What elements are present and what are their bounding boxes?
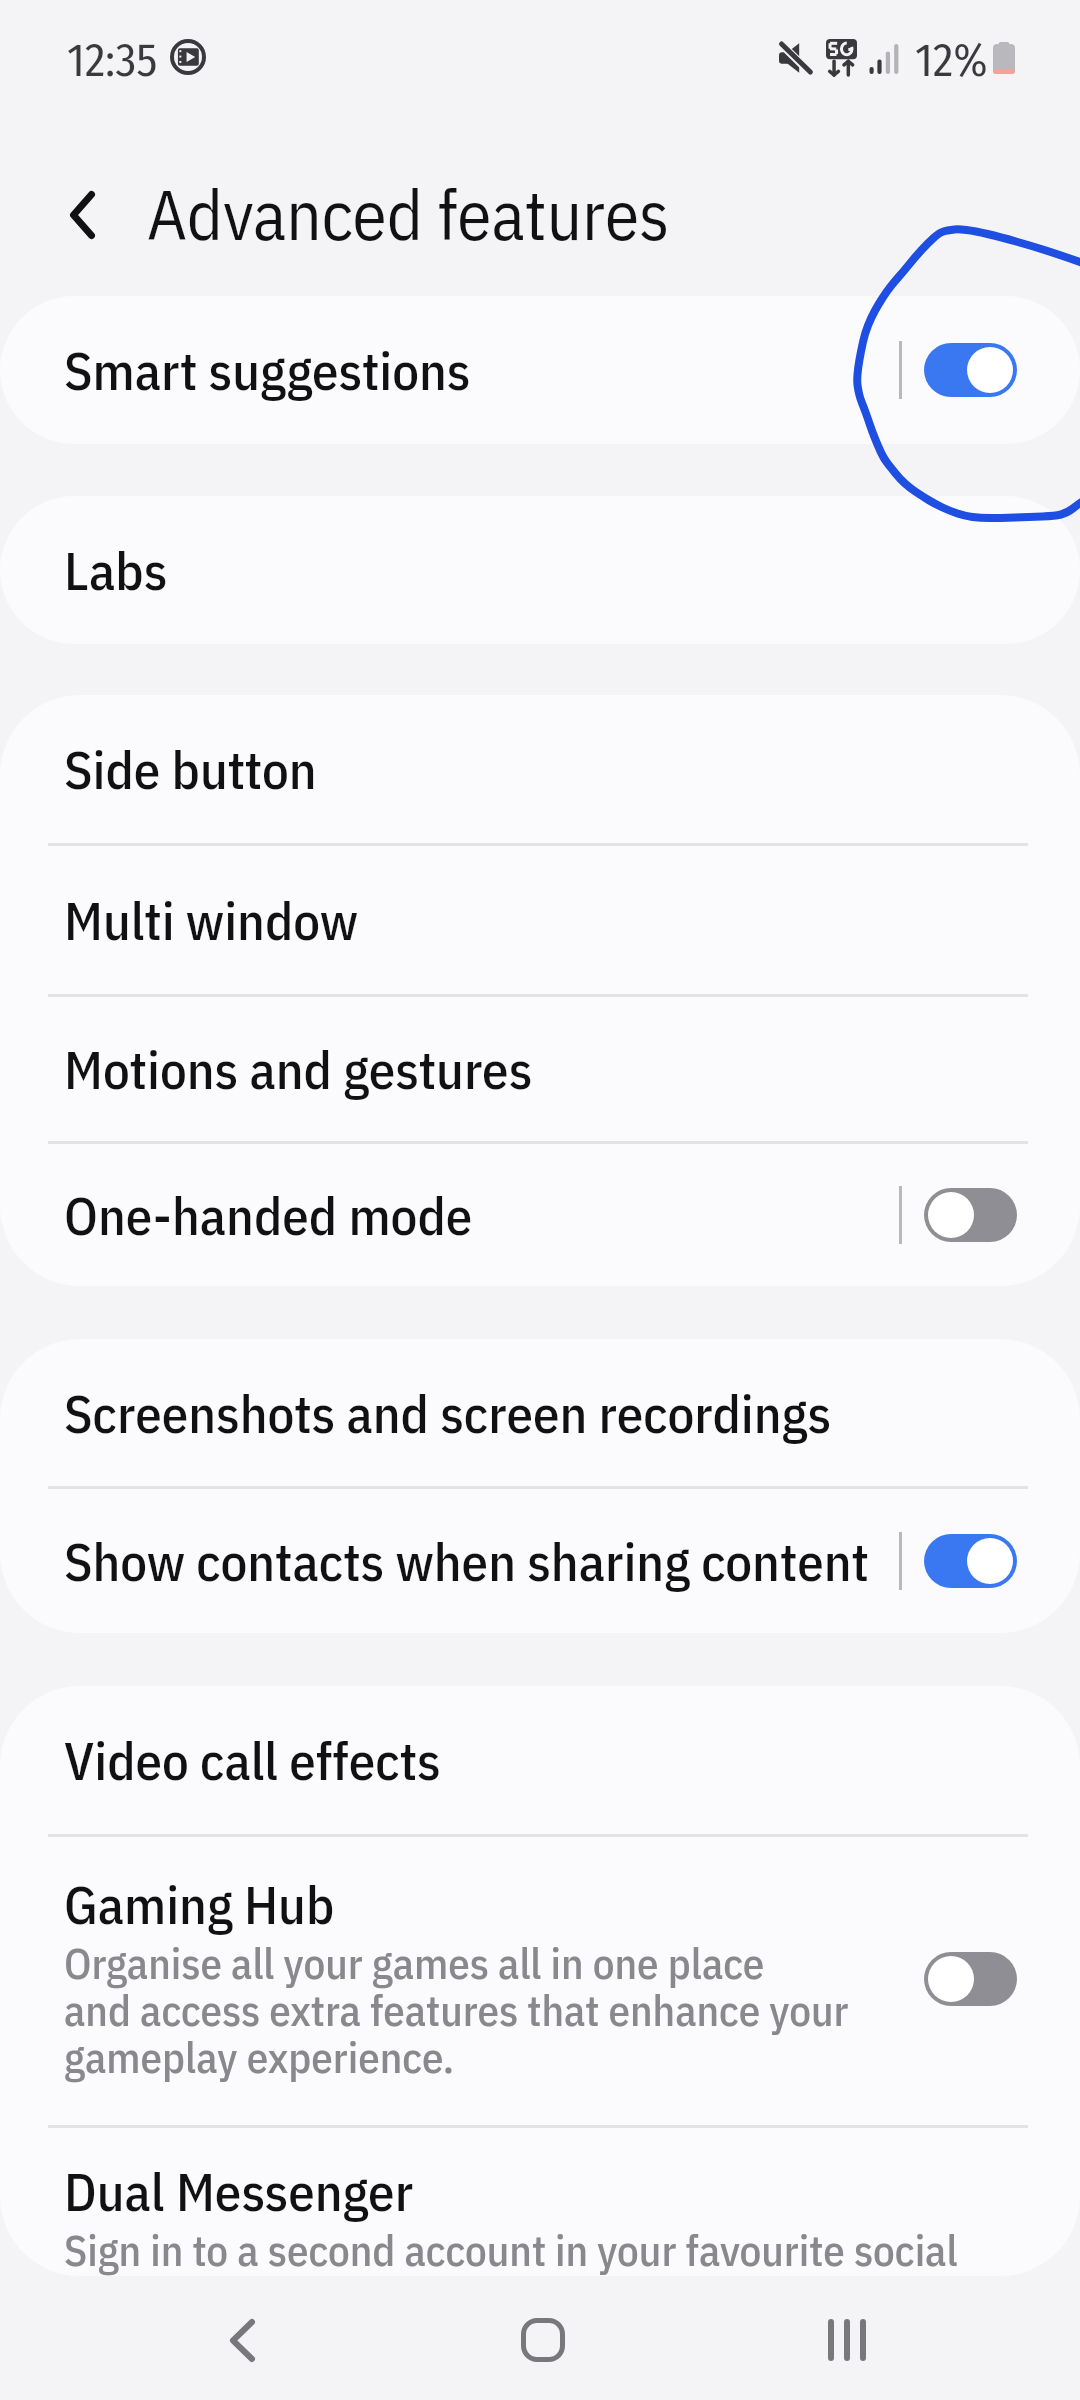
button[interactable]: Motions and gestures xyxy=(0,997,1080,1141)
button[interactable]: Switch on xyxy=(924,343,1017,397)
button[interactable]: Gaming Hub xyxy=(0,1837,1080,2125)
staticText: Dual Messenger xyxy=(64,2161,414,2225)
staticText: 12% xyxy=(915,33,988,88)
button[interactable]: Switch off xyxy=(924,1188,1017,1242)
staticText: Show contacts when sharing content xyxy=(64,1531,869,1595)
staticText: One-handed mode xyxy=(64,1185,473,1249)
button[interactable]: Show contacts when sharing content xyxy=(0,1489,1080,1633)
button[interactable]: Dual Messenger xyxy=(0,2128,1080,2276)
staticText: Sign in to a second account in your favo… xyxy=(64,2229,958,2276)
button[interactable]: Switch on xyxy=(924,1534,1017,1588)
staticText: 12:35 xyxy=(67,33,158,88)
staticText: Motions and gestures xyxy=(64,1039,533,1103)
staticText: Labs xyxy=(64,540,168,604)
button[interactable]: One-handed mode xyxy=(0,1144,1080,1286)
button[interactable]: Switch off xyxy=(924,1952,1017,2006)
staticText: Organise all your games all in one place… xyxy=(64,1942,849,2083)
button[interactable]: Screenshots and screen recordings xyxy=(0,1339,1080,1486)
staticText: Multi window xyxy=(64,890,359,954)
staticText: Gaming Hub xyxy=(64,1874,335,1938)
button[interactable]: Video call effects xyxy=(0,1686,1080,1834)
button[interactable]: Smart suggestions xyxy=(0,296,1080,444)
button[interactable]: Home xyxy=(483,2280,603,2400)
button[interactable]: Side button xyxy=(0,695,1080,843)
button[interactable]: Navigate up xyxy=(22,155,142,275)
button[interactable]: Recent apps xyxy=(787,2280,907,2400)
button[interactable]: Labs xyxy=(0,496,1080,644)
staticText: Advanced features xyxy=(147,177,670,257)
staticText: Screenshots and screen recordings xyxy=(64,1383,832,1447)
button[interactable]: Multi window xyxy=(0,846,1080,994)
staticText: Video call effects xyxy=(64,1730,441,1794)
staticText: Side button xyxy=(64,739,317,803)
staticText: Smart suggestions xyxy=(64,340,471,404)
button[interactable]: Back xyxy=(182,2280,302,2400)
